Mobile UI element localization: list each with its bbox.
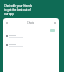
button[interactable] — [6, 35, 59, 38]
staticText: Chats — [27, 21, 34, 25]
button[interactable] — [50, 29, 55, 32]
staticText: our app — [4, 12, 14, 16]
staticText: to get the best out of — [4, 8, 31, 12]
staticText: Chat with your friends — [4, 4, 32, 8]
button[interactable] — [6, 44, 59, 47]
